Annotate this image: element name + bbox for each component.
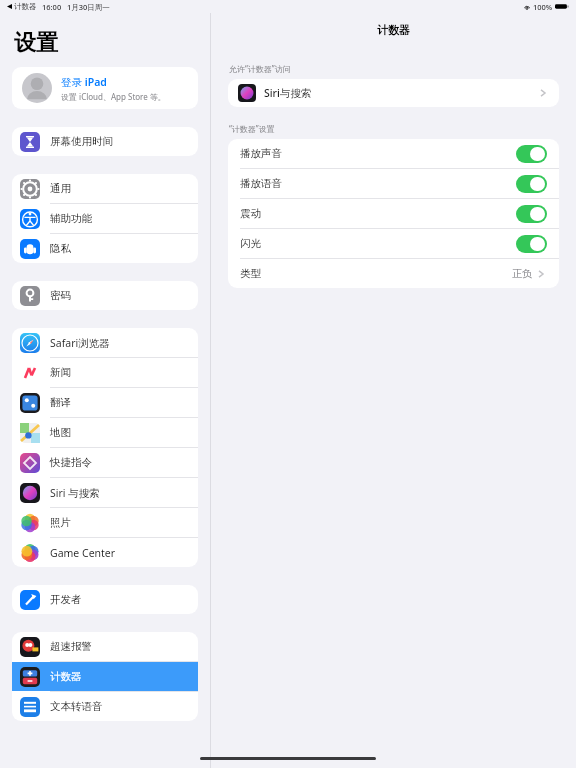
staticText: 16:00 bbox=[42, 2, 62, 12]
staticText: 翻译 bbox=[50, 396, 71, 409]
button[interactable]: Siri 与搜索 bbox=[12, 478, 198, 507]
staticText: 震动 bbox=[240, 207, 261, 220]
staticText: Game Center bbox=[50, 546, 116, 560]
staticText: 地图 bbox=[50, 426, 71, 439]
staticText: 登录 iPad bbox=[61, 75, 107, 89]
button[interactable]: 密码 bbox=[12, 281, 198, 310]
button[interactable]: 登录 iPad bbox=[12, 67, 198, 109]
staticText: 设置 iCloud、App Store 等。 bbox=[61, 91, 166, 102]
button[interactable]: Toggle on bbox=[516, 175, 547, 193]
staticText: 照片 bbox=[50, 516, 71, 529]
button[interactable]: Toggle on bbox=[516, 235, 547, 253]
button[interactable]: 开发者 bbox=[12, 585, 198, 614]
staticText: 计数器 bbox=[50, 670, 82, 683]
button[interactable]: 地图 bbox=[12, 418, 198, 447]
staticText: 文本转语音 bbox=[50, 700, 103, 713]
staticText: 计数器 bbox=[211, 23, 576, 37]
staticText: 计数器 bbox=[14, 2, 37, 11]
button[interactable]: Toggle on bbox=[516, 145, 547, 163]
button[interactable]: 屏幕使用时间 bbox=[12, 127, 198, 156]
staticText: 1月30日周一 bbox=[67, 2, 110, 12]
button[interactable]: 计数器 bbox=[12, 662, 198, 691]
button[interactable]: Safari浏览器 bbox=[12, 328, 198, 357]
button[interactable]: 隐私 bbox=[12, 234, 198, 263]
staticText: 闪光 bbox=[240, 237, 261, 250]
button[interactable]: 播放声音 bbox=[228, 139, 559, 168]
staticText: 快捷指令 bbox=[50, 456, 92, 469]
button[interactable]: Toggle on bbox=[516, 205, 547, 223]
button[interactable]: 辅助功能 bbox=[12, 204, 198, 233]
button[interactable]: 翻译 bbox=[12, 388, 198, 417]
staticText: 正负 bbox=[512, 267, 532, 280]
staticText: Safari浏览器 bbox=[50, 336, 110, 350]
button[interactable]: Game Center bbox=[12, 538, 198, 567]
staticText: 播放语音 bbox=[240, 177, 282, 190]
staticText: 密码 bbox=[50, 289, 71, 302]
staticText: 辅助功能 bbox=[50, 212, 92, 225]
staticText: 允许“计数器”访问 bbox=[229, 63, 291, 74]
button[interactable]: 新闻 bbox=[12, 358, 198, 387]
staticText: Siri 与搜索 bbox=[50, 486, 100, 500]
staticText: 播放声音 bbox=[240, 147, 282, 160]
button[interactable]: 闪光 bbox=[228, 229, 559, 258]
button[interactable]: 震动 bbox=[228, 199, 559, 228]
button[interactable]: 类型 bbox=[228, 259, 559, 288]
button[interactable]: Siri与搜索 bbox=[228, 79, 559, 107]
staticText: 新闻 bbox=[50, 366, 71, 379]
staticText: 通用 bbox=[50, 182, 71, 195]
button[interactable]: 通用 bbox=[12, 174, 198, 203]
button[interactable]: 超速报警 bbox=[12, 632, 198, 661]
staticText: 屏幕使用时间 bbox=[50, 135, 113, 148]
staticText: 开发者 bbox=[50, 593, 82, 606]
staticText: 100% bbox=[533, 2, 553, 12]
staticText: Siri与搜索 bbox=[264, 86, 312, 100]
staticText: 设置 bbox=[14, 29, 58, 57]
staticText: 类型 bbox=[240, 267, 261, 280]
staticText: 隐私 bbox=[50, 242, 71, 255]
button[interactable]: 文本转语音 bbox=[12, 692, 198, 721]
button[interactable]: 快捷指令 bbox=[12, 448, 198, 477]
button[interactable]: 照片 bbox=[12, 508, 198, 537]
staticText: 超速报警 bbox=[50, 640, 92, 653]
button[interactable]: 播放语音 bbox=[228, 169, 559, 198]
staticText: “计数器”设置 bbox=[229, 123, 275, 134]
